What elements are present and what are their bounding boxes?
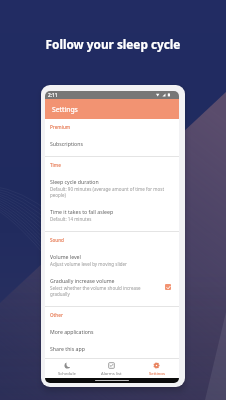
- staticText: Subscriptions: [50, 140, 83, 147]
- staticText: Sound: [50, 237, 64, 243]
- staticText: Follow your sleep cycle: [0, 36, 226, 52]
- staticText: More applications: [50, 328, 94, 335]
- staticText: Schedule: [58, 371, 76, 375]
- staticText: Premium: [50, 124, 71, 130]
- staticText: Adjust volume level by moving slider: [50, 261, 127, 267]
- staticText: Alarms list: [101, 371, 122, 375]
- button[interactable]: Gradually increase volume: [45, 272, 179, 302]
- staticText: Default: 90 minutes (average amount of t…: [50, 186, 171, 198]
- staticText: Other: [50, 312, 63, 318]
- staticText: Default: 14 minutes: [50, 216, 92, 222]
- staticText: Gradually increase volume: [50, 277, 115, 284]
- button[interactable]: Settings: [134, 359, 179, 378]
- button[interactable]: Subscriptions: [45, 135, 179, 152]
- button[interactable]: Alarms list: [89, 359, 134, 378]
- button[interactable]: Time it takes to fall asleep: [45, 203, 179, 227]
- staticText: Share this app: [50, 345, 85, 352]
- staticText: 2:11: [48, 92, 58, 99]
- staticText: Volume level: [50, 253, 81, 260]
- button[interactable]: Share this app: [45, 340, 179, 357]
- staticText: Settings: [52, 105, 78, 114]
- button[interactable]: Sleep cycle duration: [45, 173, 179, 203]
- staticText: Time it takes to fall asleep: [50, 208, 114, 215]
- staticText: Time: [50, 162, 61, 168]
- button[interactable]: More applications: [45, 323, 179, 340]
- staticText: Select whether the volume should increas…: [50, 285, 150, 297]
- staticText: Sleep cycle duration: [50, 178, 99, 185]
- staticText: Settings: [149, 371, 165, 375]
- button[interactable]: Schedule: [45, 359, 89, 378]
- button[interactable]: Volume level: [45, 248, 179, 272]
